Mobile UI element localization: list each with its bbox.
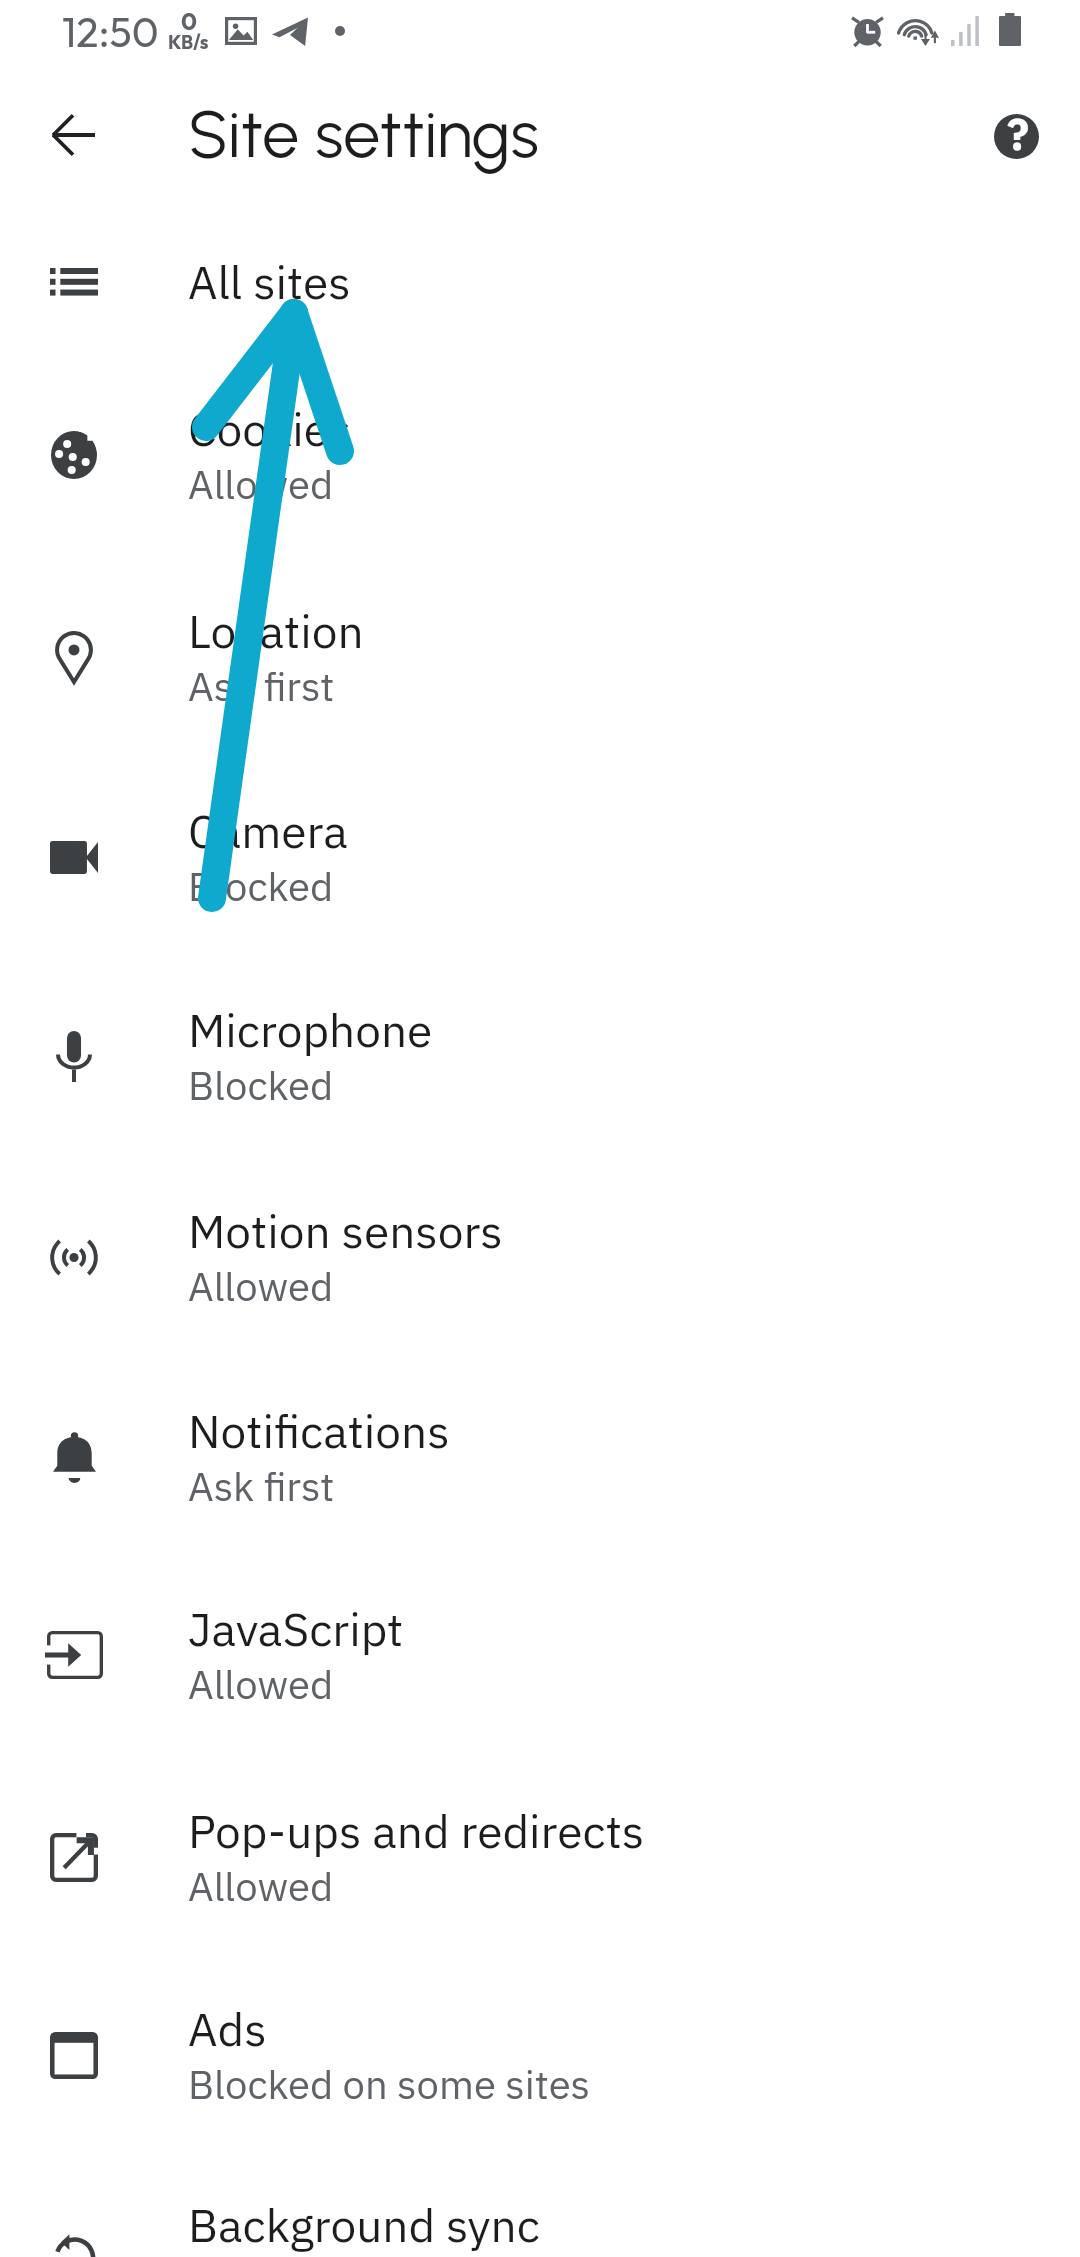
staticText: Blocked [188, 860, 334, 912]
staticText: Location [188, 601, 364, 661]
staticText: Blocked on some sites [188, 2058, 591, 2110]
staticText: All sites [188, 252, 351, 312]
staticText: Ask first [188, 660, 335, 712]
staticText: 0 [181, 6, 197, 36]
staticText: JavaScript [188, 1599, 404, 1659]
button[interactable]: Location [0, 539, 1080, 739]
button[interactable]: JavaScript [0, 1537, 1080, 1737]
button[interactable]: Help [962, 82, 1070, 190]
staticText: ? [1007, 105, 1029, 162]
staticText: 12:50 [62, 6, 159, 58]
staticText: Site settings [188, 94, 539, 173]
staticText: Ask first [188, 1460, 335, 1512]
button[interactable]: Ads [0, 1937, 1080, 2137]
staticText: Motion sensors [188, 1201, 503, 1261]
staticText: Blocked [188, 1059, 334, 1111]
staticText: Ads [188, 1999, 267, 2059]
button[interactable]: Camera [0, 739, 1080, 939]
button[interactable]: Cookies [0, 337, 1080, 537]
button[interactable]: Notifications [0, 1339, 1080, 1539]
staticText: Cookies [188, 399, 352, 459]
staticText: Allowed [188, 1260, 334, 1312]
staticText: Notifications [188, 1401, 450, 1461]
button[interactable]: All sites [0, 190, 1080, 338]
staticText: Allowed [188, 1860, 334, 1912]
staticText: Pop-ups and redirects [188, 1801, 645, 1861]
staticText: Allowed [188, 1658, 334, 1710]
button[interactable]: Back [20, 82, 128, 190]
staticText: Camera [188, 801, 348, 861]
button[interactable]: Pop-ups and redirects [0, 1739, 1080, 1939]
button[interactable]: Background sync [0, 2133, 1080, 2257]
button[interactable]: Microphone [0, 938, 1080, 1138]
staticText: Background sync [188, 2195, 540, 2255]
staticText: Microphone [188, 1000, 433, 1060]
staticText: KB/s [168, 30, 209, 54]
button[interactable]: Motion sensors [0, 1139, 1080, 1339]
staticText: Allowed [188, 458, 334, 510]
